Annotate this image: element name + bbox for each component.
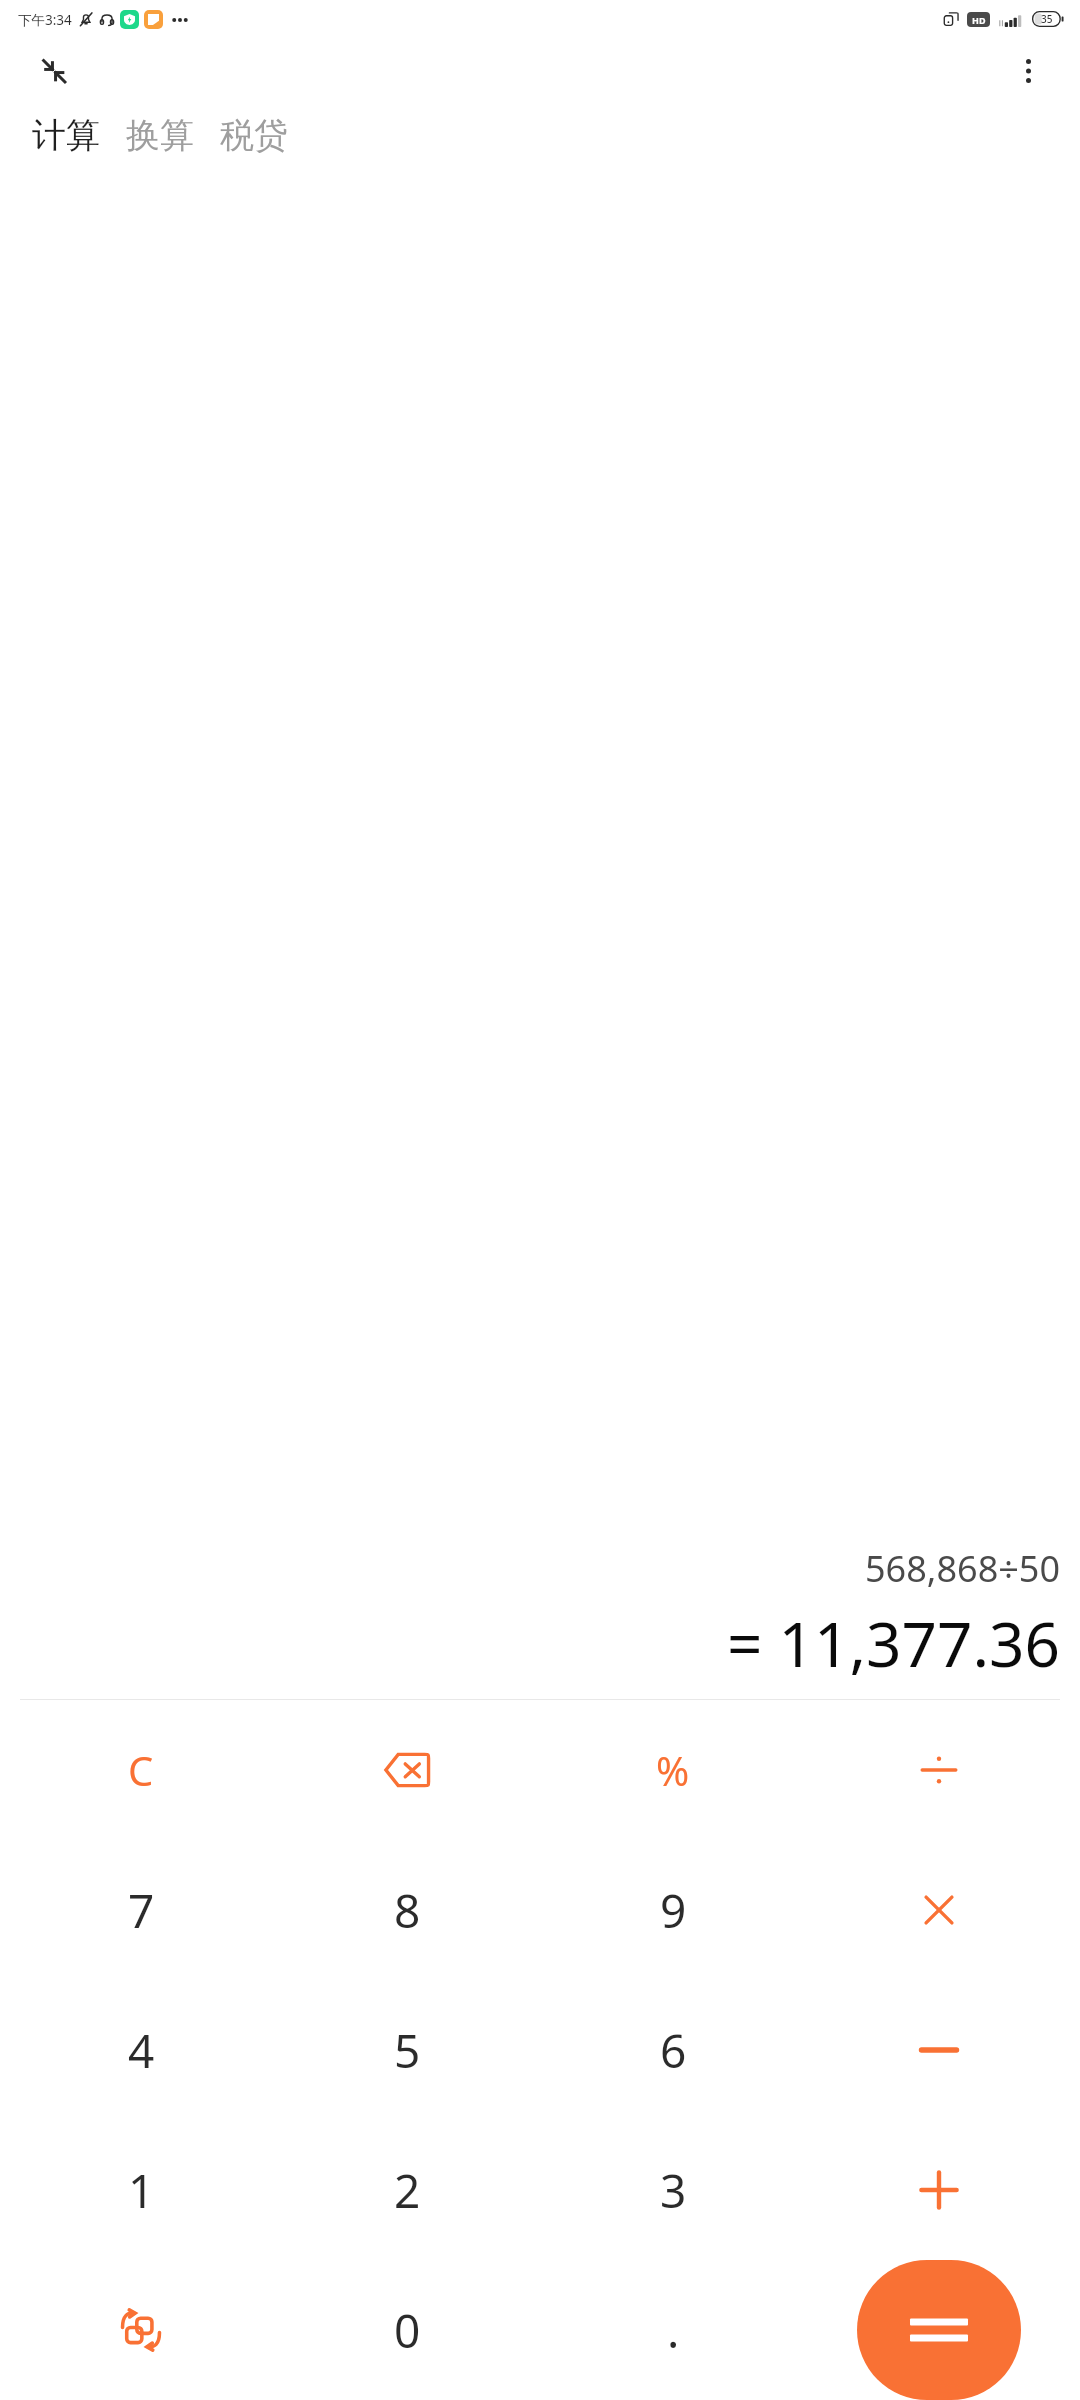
button[interactable]: 计算 [28,108,104,163]
button[interactable]: 1 [66,2124,216,2256]
staticText: HD [972,14,986,26]
staticText: C [128,1743,154,1797]
button[interactable]: More options [1004,47,1052,95]
button[interactable]: 5 [332,1984,482,2116]
staticText: 35 [1041,12,1053,26]
staticText: 9 [660,1879,687,1942]
button[interactable]: 4 [66,1984,216,2116]
button[interactable]: Unit conversion [66,2264,216,2396]
button[interactable]: 7 [66,1844,216,1976]
staticText: = 11,377.36 [726,1601,1060,1685]
staticText: 税贷 [220,114,288,157]
button[interactable]: 换算 [122,108,198,163]
staticText: 0 [394,2299,421,2362]
staticText: 6 [660,2019,687,2082]
button[interactable]: Equals [857,2260,1021,2400]
button[interactable]: Minus [864,1984,1014,2116]
staticText: 换算 [126,114,194,157]
staticText: 7 [128,1879,155,1942]
button[interactable]: 税贷 [216,108,292,163]
button[interactable]: Plus [864,2124,1014,2256]
button[interactable]: . [598,2264,748,2396]
staticText: 8 [394,1879,421,1942]
staticText: 2 [394,2159,421,2222]
button[interactable]: 6 [598,1984,748,2116]
button[interactable]: Collapse [30,47,78,95]
staticText: 568,868÷50 [865,1544,1060,1593]
button[interactable]: 0 [332,2264,482,2396]
staticText: 4 [128,2019,155,2082]
staticText: 5 [394,2019,421,2082]
staticText: % [656,1743,690,1797]
button[interactable]: % [598,1704,748,1836]
button[interactable]: 8 [332,1844,482,1976]
staticText: . [667,2299,680,2362]
staticText: 下午3:34 [18,11,72,29]
button[interactable]: Multiply [864,1844,1014,1976]
staticText: 计算 [32,114,100,157]
staticText: 1 [128,2159,155,2222]
button[interactable]: 3 [598,2124,748,2256]
button[interactable]: Divide [864,1704,1014,1836]
button[interactable]: Backspace [332,1704,482,1836]
button[interactable]: 2 [332,2124,482,2256]
button[interactable]: 9 [598,1844,748,1976]
button[interactable]: Clear [66,1704,216,1836]
staticText: 3 [660,2159,687,2222]
